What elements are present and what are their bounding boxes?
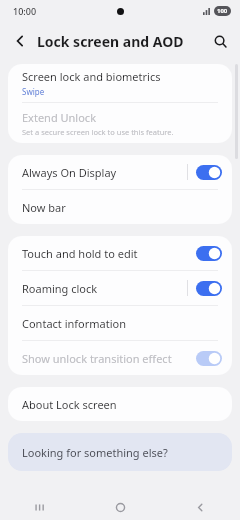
staticText: Show unlock transition effect	[22, 351, 196, 366]
staticText: 100	[217, 7, 228, 15]
button[interactable]: Recent apps	[0, 494, 80, 520]
button[interactable]: Search	[206, 27, 234, 55]
button[interactable]: Home	[80, 494, 160, 520]
button[interactable]: Looking for something else?	[8, 433, 232, 471]
button[interactable]: Now bar	[8, 190, 232, 224]
button[interactable]: Contact information	[8, 306, 232, 340]
staticText: About Lock screen	[22, 397, 117, 412]
button[interactable]: Toggle	[196, 165, 222, 180]
button[interactable]: Touch and hold to edit	[8, 236, 232, 270]
staticText: Touch and hold to edit	[22, 246, 196, 261]
button[interactable]: Toggle	[196, 351, 222, 366]
staticText: Screen lock and biometrics	[22, 69, 161, 84]
staticText: Set a secure screen lock to use this fea…	[22, 127, 174, 137]
staticText: Always On Display	[22, 165, 187, 180]
staticText: 10:00	[13, 5, 37, 17]
button[interactable]: Back	[6, 27, 34, 55]
button[interactable]: Show unlock transition effect	[8, 341, 232, 375]
button[interactable]: Back	[160, 494, 240, 520]
button[interactable]: Toggle	[196, 246, 222, 261]
staticText: Now bar	[22, 200, 66, 215]
staticText: Extend Unlock	[22, 110, 97, 125]
button[interactable]: Screen lock and biometrics	[8, 64, 232, 102]
button[interactable]: Extend Unlock	[8, 103, 232, 143]
button[interactable]: About Lock screen	[8, 387, 232, 421]
staticText: Looking for something else?	[22, 445, 168, 460]
staticText: Roaming clock	[22, 281, 187, 296]
button[interactable]: Always On Display	[8, 155, 232, 189]
button[interactable]: Roaming clock	[8, 271, 232, 305]
staticText: Lock screen and AOD	[37, 32, 184, 51]
staticText: Contact information	[22, 316, 126, 331]
button[interactable]: Toggle	[196, 281, 222, 296]
staticText: Swipe	[22, 86, 45, 97]
